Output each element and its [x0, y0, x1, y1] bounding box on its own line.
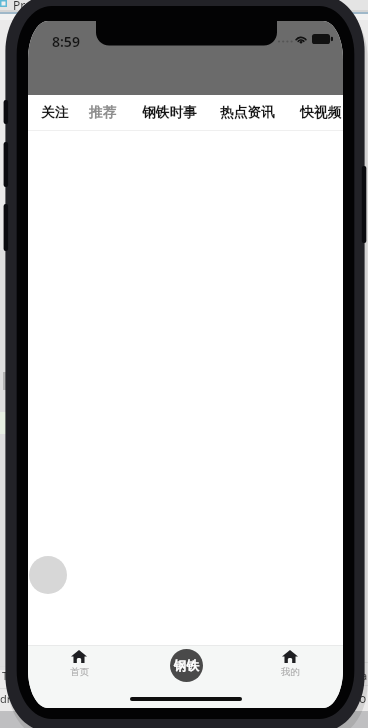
staticText: 钢铁时事 — [142, 104, 197, 121]
staticText: 热点资讯 — [220, 104, 275, 121]
button[interactable]: 首页 — [57, 650, 101, 678]
staticText: T — [2, 668, 9, 683]
staticText: dr — [0, 691, 12, 706]
button[interactable]: Floating action button — [29, 556, 67, 594]
staticText: a — [361, 668, 368, 683]
button[interactable]: 快视频 — [293, 95, 343, 130]
staticText: Project — [13, 0, 53, 13]
button[interactable]: 热点资讯 — [213, 95, 282, 130]
staticText: 钢铁 — [174, 658, 199, 674]
button[interactable]: 推荐 — [82, 95, 124, 130]
staticText: o — [359, 690, 367, 706]
staticText: 快视频 — [300, 104, 342, 121]
staticText: 8:59 — [52, 32, 80, 51]
button[interactable]: Publish — [170, 649, 203, 682]
staticText: 首页 — [70, 666, 89, 678]
staticText: 关注 — [41, 104, 69, 121]
button[interactable]: 钢铁时事 — [135, 95, 204, 130]
staticText: @稀土掘金技术社区 — [261, 704, 350, 718]
staticText: 我的 — [281, 666, 300, 678]
staticText: 推荐 — [89, 104, 117, 121]
button[interactable]: 我的 — [268, 650, 312, 678]
button[interactable]: 关注 — [34, 95, 76, 130]
